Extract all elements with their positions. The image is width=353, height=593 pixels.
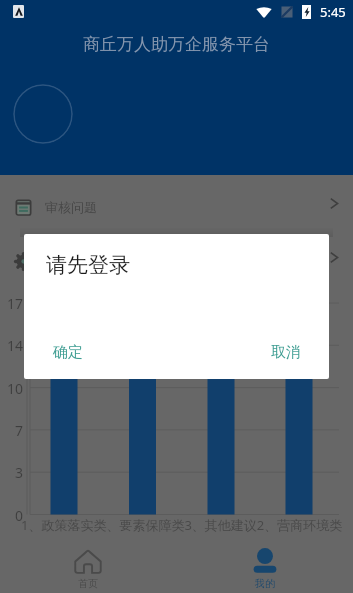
staticText: 设置	[45, 253, 71, 269]
button[interactable]: 审核问题	[0, 185, 353, 229]
staticText: 审核问题	[45, 199, 97, 215]
button[interactable]: 我的	[225, 545, 305, 593]
staticText: 商丘万人助万企服务平台	[83, 34, 270, 55]
staticText: 7	[15, 421, 24, 440]
button[interactable]: 首页	[48, 545, 128, 593]
staticText: 5:45	[320, 3, 346, 21]
staticText: 0	[15, 506, 24, 525]
button[interactable]: 设置	[0, 239, 353, 283]
staticText: 我的	[255, 577, 275, 590]
staticText: 取消	[271, 343, 301, 362]
staticText: 3	[15, 463, 24, 482]
button[interactable]: 取消	[263, 337, 309, 368]
button[interactable]: Profile photo	[13, 84, 73, 144]
staticText: 14	[7, 336, 24, 355]
staticText: 首页	[78, 577, 98, 590]
staticText: 确定	[53, 343, 83, 362]
staticText: 10	[7, 379, 24, 398]
staticText: 17	[7, 294, 24, 313]
staticText: 请先登录	[46, 252, 130, 278]
staticText: 1、政策落实类、要素保障类3、其他建议2、营商环境类	[21, 516, 343, 534]
button[interactable]: 确定	[45, 337, 91, 368]
